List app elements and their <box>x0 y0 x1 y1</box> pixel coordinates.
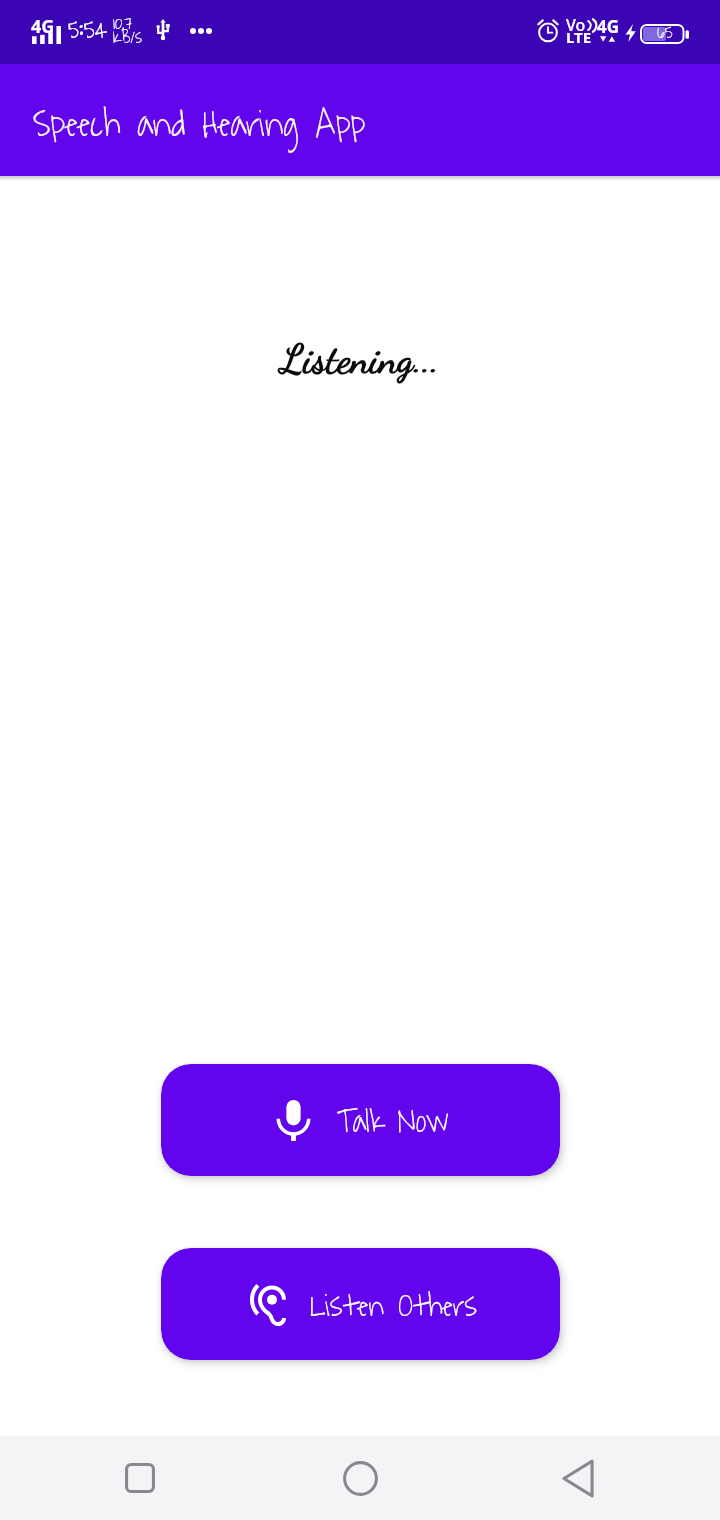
staticText: 4G <box>31 14 55 39</box>
button[interactable]: Back <box>534 1436 622 1520</box>
staticText: Talk Now <box>337 1096 450 1149</box>
button[interactable]: Recent apps <box>96 1436 184 1520</box>
staticText: Speech and Hearing App <box>33 93 366 156</box>
staticText: Listening... <box>281 335 440 383</box>
staticText: Listen Others <box>310 1280 477 1333</box>
staticText: KB/s <box>113 23 143 53</box>
staticText: 10.7 <box>113 9 133 39</box>
button[interactable]: Home <box>316 1436 404 1520</box>
staticText: 65 <box>657 16 673 49</box>
button[interactable]: Talk Now <box>161 1064 560 1176</box>
staticText: 4G <box>597 15 620 38</box>
staticText: LTE <box>566 27 592 47</box>
button[interactable]: Listen Others <box>161 1248 560 1360</box>
staticText: Vo <box>566 14 586 36</box>
staticText: 5:54 <box>68 7 108 53</box>
